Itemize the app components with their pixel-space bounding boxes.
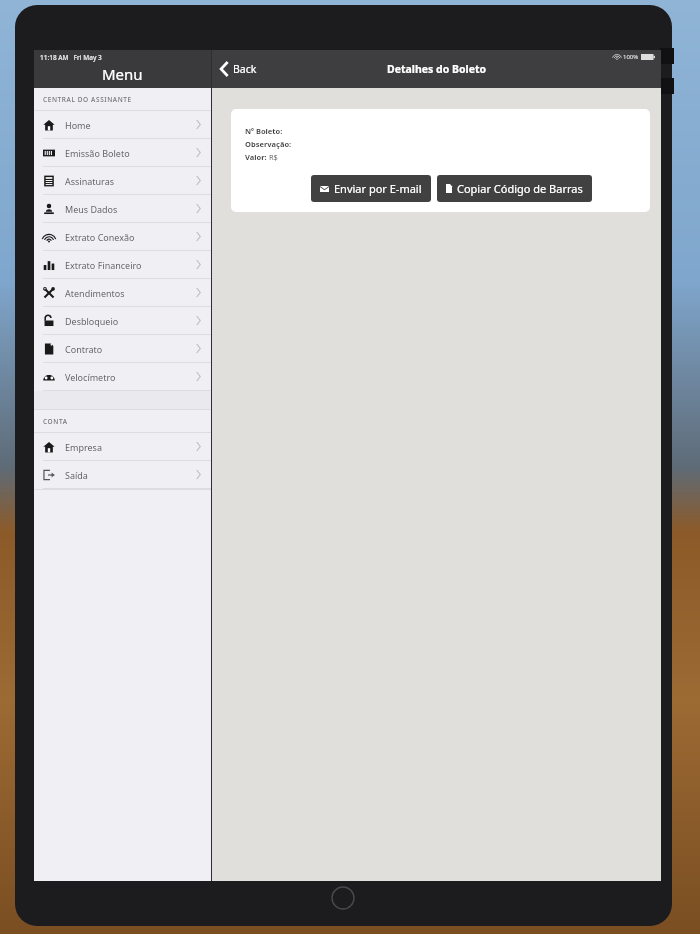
staticText: Copiar Código de Barras <box>457 181 583 196</box>
staticText: CONTA <box>43 417 68 426</box>
staticText: Velocímetro <box>65 371 196 383</box>
staticText: Meus Dados <box>65 203 196 215</box>
button[interactable]: Empresa <box>34 433 211 460</box>
staticText: Detalhes do Boleto <box>387 62 487 76</box>
staticText: Contrato <box>65 343 196 355</box>
staticText: Menu <box>102 64 143 84</box>
button[interactable]: Saída <box>34 461 211 488</box>
button[interactable]: Desbloqueio <box>34 307 211 334</box>
staticText: Saída <box>65 469 196 481</box>
button[interactable]: Copy <box>437 175 592 202</box>
staticText: Valor: <box>245 152 267 162</box>
button[interactable]: Velocímetro <box>34 363 211 390</box>
staticText: 100% <box>623 53 639 61</box>
button[interactable]: Back <box>217 57 260 81</box>
button[interactable]: Extrato Financeiro <box>34 251 211 278</box>
staticText: Extrato Financeiro <box>65 259 196 271</box>
staticText: Atendimentos <box>65 287 196 299</box>
button[interactable]: Extrato Conexão <box>34 223 211 250</box>
button[interactable]: Home <box>34 111 211 138</box>
staticText: Extrato Conexão <box>65 231 196 243</box>
other: Copy <box>446 184 452 193</box>
staticText: R$ <box>267 152 278 162</box>
button[interactable]: Assinaturas <box>34 167 211 194</box>
staticText: Observação: <box>245 139 292 149</box>
button[interactable]: Atendimentos <box>34 279 211 306</box>
other: Email <box>320 186 329 192</box>
staticText: Enviar por E-mail <box>334 181 422 196</box>
staticText: CENTRAL DO ASSINANTE <box>43 95 132 104</box>
button[interactable]: Contrato <box>34 335 211 362</box>
staticText: Empresa <box>65 441 196 453</box>
button[interactable]: Emissão Boleto <box>34 139 211 166</box>
staticText: Nº Boleto: <box>245 126 283 136</box>
staticText: Desbloqueio <box>65 315 196 327</box>
button[interactable]: Meus Dados <box>34 195 211 222</box>
staticText: Emissão Boleto <box>65 147 196 159</box>
staticText: Home <box>65 119 196 131</box>
button[interactable]: Email <box>311 175 431 202</box>
staticText: Back <box>233 62 257 76</box>
staticText: Assinaturas <box>65 175 196 187</box>
staticText: 11:18 AM Fri May 3 <box>40 53 102 62</box>
